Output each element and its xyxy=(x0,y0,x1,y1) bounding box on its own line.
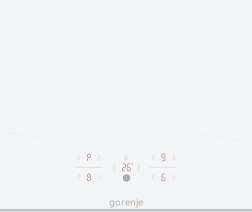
button[interactable]: Decrease Right rear zone xyxy=(149,152,157,162)
button[interactable]: Raise temperature xyxy=(135,162,143,172)
button[interactable]: Decrease Left rear zone xyxy=(75,152,83,162)
button[interactable]: Increase Left front zone xyxy=(95,172,103,182)
button[interactable]: Increase Right front zone xyxy=(170,172,178,182)
staticText: gorenje xyxy=(109,196,143,208)
button[interactable]: Lower temperature xyxy=(110,162,118,172)
button[interactable]: Increase Left rear zone xyxy=(95,152,103,162)
button[interactable]: Power xyxy=(121,173,131,183)
button[interactable]: Decrease Right front zone xyxy=(149,172,157,182)
button[interactable]: Increase Right rear zone xyxy=(170,152,178,162)
button[interactable]: Decrease Left front zone xyxy=(75,172,83,182)
